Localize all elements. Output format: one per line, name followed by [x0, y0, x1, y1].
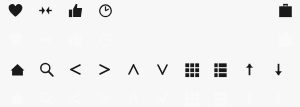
button[interactable]: Expand less	[126, 62, 141, 77]
button[interactable]: Sort descending	[271, 62, 286, 77]
button[interactable]: Like	[68, 3, 83, 18]
button[interactable]: Sort ascending	[242, 62, 257, 77]
button[interactable]: Next	[97, 62, 112, 77]
button[interactable]: Grid view	[184, 62, 199, 77]
button[interactable]: List view	[213, 62, 228, 77]
button[interactable]: Collapse	[38, 3, 53, 18]
button[interactable]: Previous	[68, 62, 83, 77]
button[interactable]: Favorite	[8, 3, 23, 18]
button[interactable]: Home	[10, 62, 25, 77]
button[interactable]: Timer	[98, 3, 113, 18]
button[interactable]: Expand more	[155, 62, 170, 77]
button[interactable]: Work	[278, 3, 293, 18]
button[interactable]: Search	[39, 62, 54, 77]
